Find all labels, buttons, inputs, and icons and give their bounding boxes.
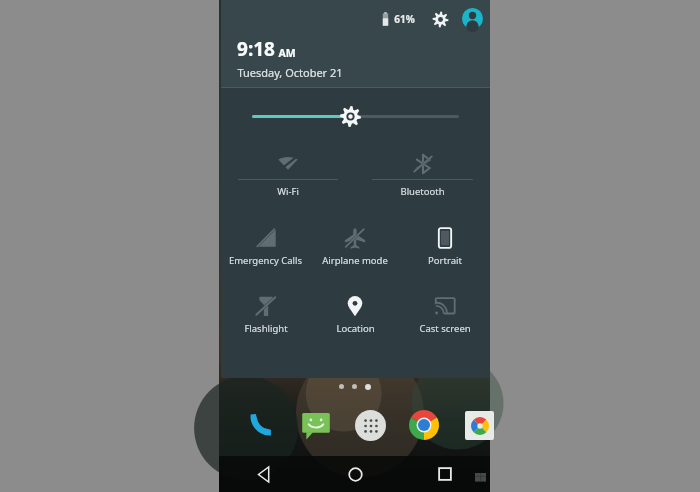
staticText: Cast screen xyxy=(419,322,471,335)
staticText: Portrait xyxy=(428,254,462,267)
button[interactable]: Settings xyxy=(429,8,451,30)
button[interactable]: Switch user xyxy=(461,7,484,30)
button[interactable]: Chrome xyxy=(405,406,443,444)
staticText: Bluetooth xyxy=(400,185,445,198)
staticText: AM xyxy=(278,46,296,60)
staticText: Wi-Fi xyxy=(277,185,299,198)
button[interactable]: Messaging xyxy=(297,406,335,444)
button[interactable]: Wi-Fi xyxy=(227,144,349,204)
staticText: 61% xyxy=(394,12,415,26)
button[interactable]: Brightness xyxy=(339,105,362,128)
button[interactable]: Back xyxy=(219,456,310,492)
staticText: Airplane mode xyxy=(322,254,388,267)
button[interactable]: Airplane mode xyxy=(310,218,400,273)
staticText: 9:18 xyxy=(237,36,275,62)
staticText: Location xyxy=(336,322,375,335)
button[interactable]: Home xyxy=(310,456,400,492)
button[interactable]: Phone xyxy=(242,406,280,444)
button[interactable]: Flashlight xyxy=(221,286,310,341)
button[interactable]: Location xyxy=(310,286,400,341)
button[interactable]: Bluetooth xyxy=(361,144,484,204)
button[interactable]: Recent apps xyxy=(400,456,490,492)
button[interactable]: Apps xyxy=(351,406,389,444)
button[interactable]: Photos xyxy=(460,406,498,444)
staticText: Flashlight xyxy=(244,322,288,335)
button[interactable]: Portrait xyxy=(400,218,490,273)
staticText: Tuesday, October 21 xyxy=(237,65,343,80)
staticText: Emergency Calls Only xyxy=(221,254,310,270)
button[interactable]: Cast screen xyxy=(400,286,490,341)
button[interactable]: Emergency Calls Only xyxy=(221,218,310,276)
